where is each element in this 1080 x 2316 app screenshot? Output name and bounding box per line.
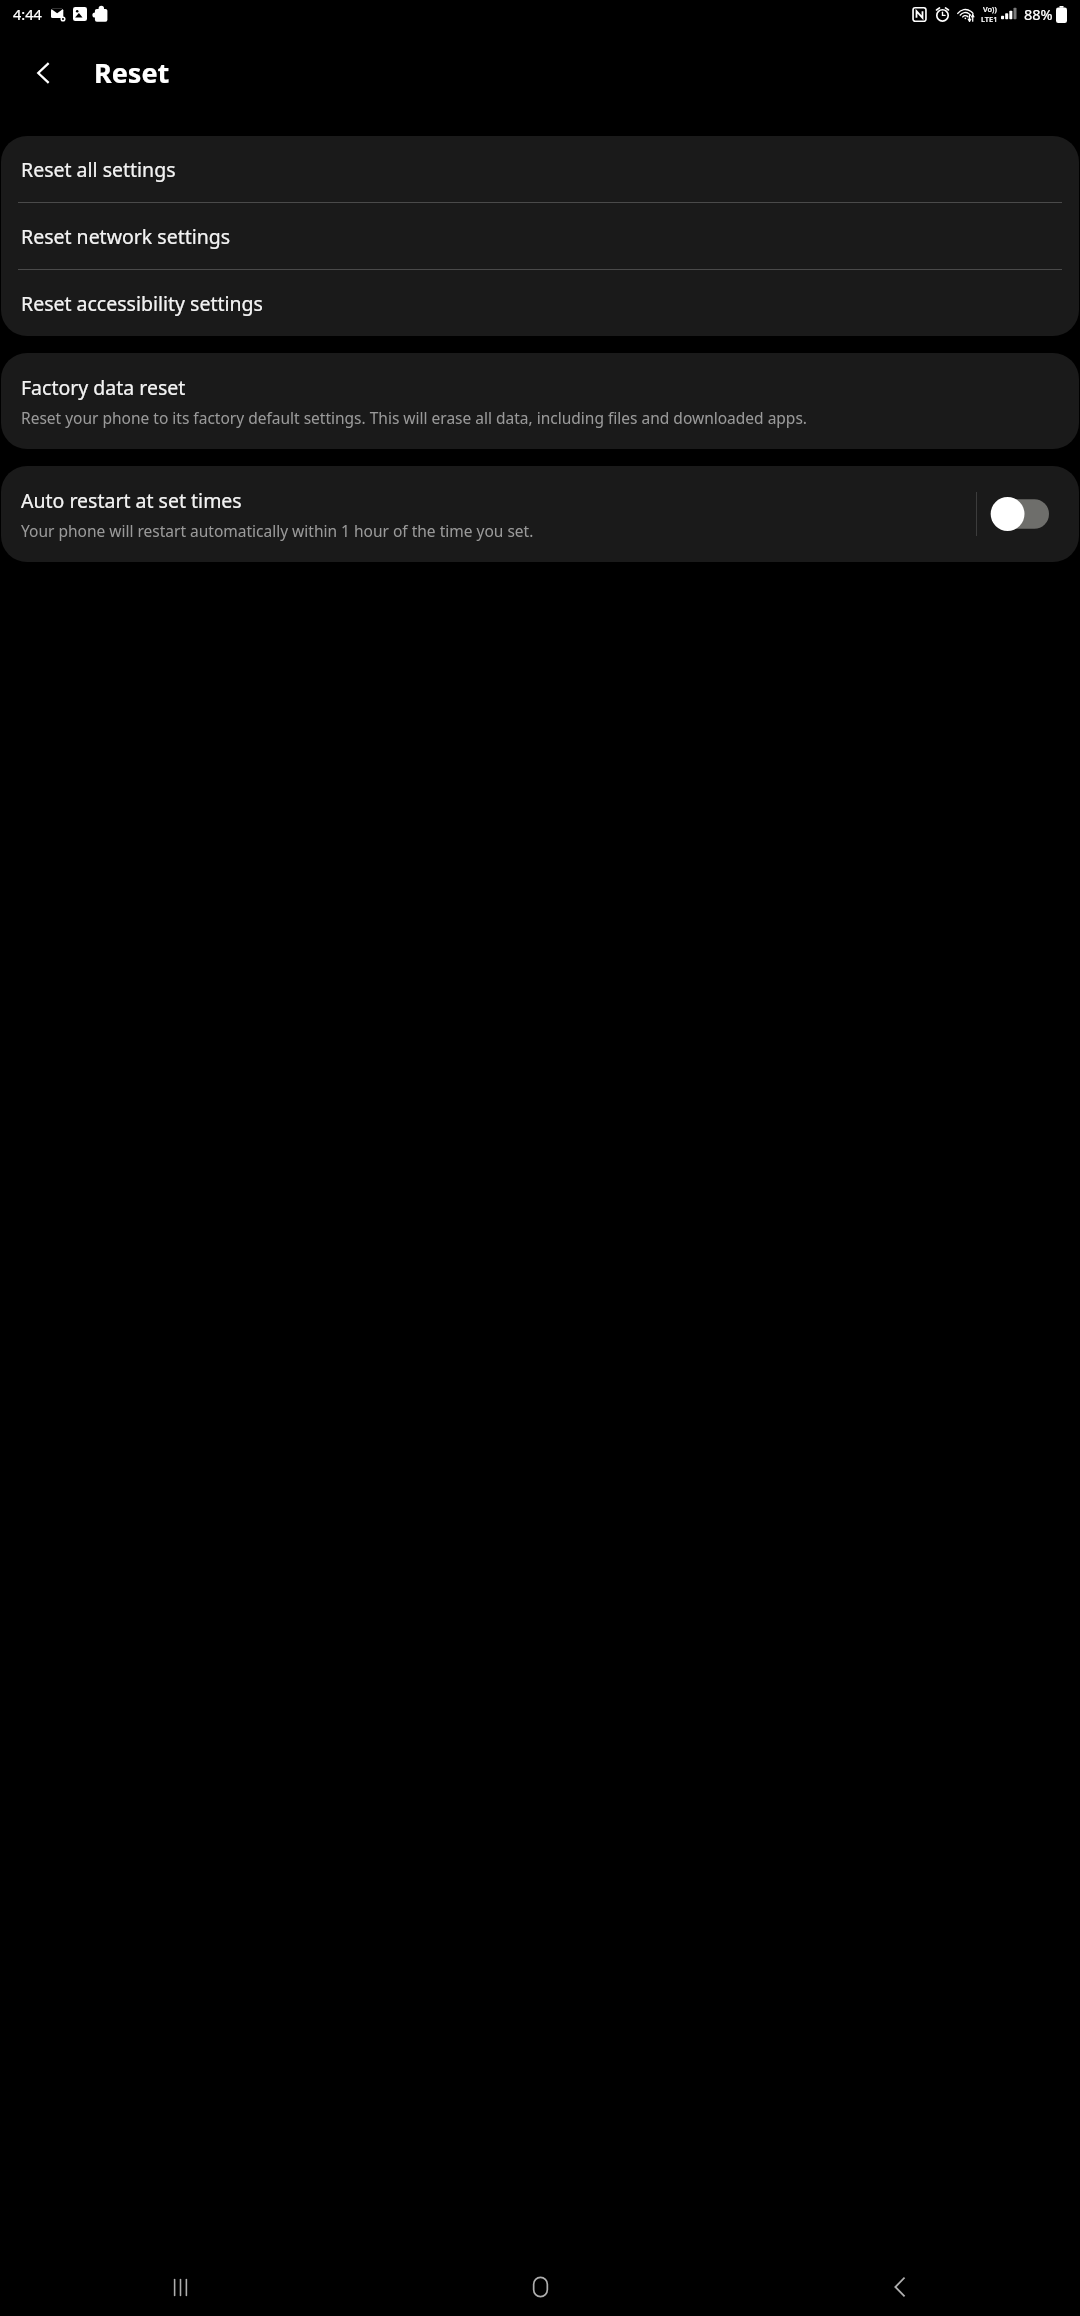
- button[interactable]: Reset accessibility settings: [1, 270, 1079, 336]
- staticText: Vo)): [983, 4, 997, 14]
- button[interactable]: Reset network settings: [1, 203, 1079, 269]
- staticText: Reset your phone to its factory default …: [21, 407, 807, 428]
- staticText: Reset all settings: [21, 156, 176, 183]
- staticText: Reset network settings: [21, 223, 231, 250]
- staticText: Reset: [94, 54, 170, 91]
- staticText: LTE1: [981, 14, 998, 24]
- button[interactable]: Home: [360, 2258, 720, 2316]
- staticText: Reset accessibility settings: [21, 290, 263, 317]
- staticText: Factory data reset: [21, 374, 186, 401]
- button[interactable]: Back: [20, 49, 68, 97]
- button[interactable]: Back: [720, 2258, 1080, 2316]
- button[interactable]: Auto restart at set times toggle: [991, 488, 1063, 540]
- staticText: Auto restart at set times: [21, 487, 242, 514]
- button[interactable]: Reset all settings: [1, 136, 1079, 202]
- button[interactable]: Recent apps: [0, 2258, 360, 2316]
- staticText: 88%: [1024, 4, 1053, 24]
- staticText: 4:44: [13, 4, 42, 24]
- button[interactable]: Factory data reset: [1, 353, 1079, 449]
- staticText: Your phone will restart automatically wi…: [21, 520, 534, 541]
- button[interactable]: Auto restart at set times: [1, 466, 976, 562]
